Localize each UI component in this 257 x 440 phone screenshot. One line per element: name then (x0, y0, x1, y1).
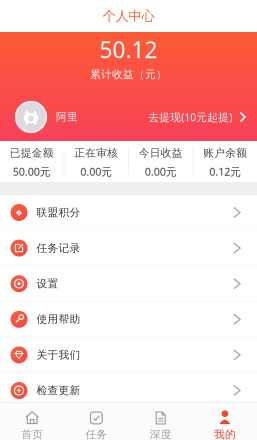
button[interactable]: 使用帮助 (0, 302, 257, 337)
button[interactable]: 联盟积分 (0, 195, 257, 230)
button[interactable]: 关于我们 (0, 337, 257, 372)
button[interactable]: 首页 (0, 403, 64, 440)
staticText: 关于我们 (36, 348, 80, 361)
staticText: 0.00元 (80, 164, 112, 179)
staticText: 任务记录 (36, 241, 80, 255)
staticText: 0.00元 (145, 164, 177, 179)
staticText: 联盟积分 (36, 206, 80, 219)
staticText: 阿里 (56, 110, 78, 123)
button[interactable]: 去提现(10元起提) (148, 110, 246, 124)
staticText: 账户余额 (203, 146, 247, 159)
staticText: 个人中心 (102, 8, 154, 24)
staticText: 50.12 (99, 34, 157, 64)
staticText: 任务 (85, 428, 107, 440)
staticText: 设置 (36, 277, 58, 290)
staticText: 深度 (150, 428, 172, 440)
button[interactable]: 任务记录 (0, 231, 257, 266)
button[interactable]: 个人中心 (0, 0, 257, 32)
button[interactable]: 任务 (64, 403, 128, 440)
staticText: 检查更新 (36, 384, 80, 397)
staticText: 首页 (21, 428, 43, 440)
staticText: 我的 (214, 428, 236, 440)
staticText: 已提金额 (10, 146, 54, 159)
button[interactable]: 检查更新 (0, 373, 257, 408)
staticText: 去提现(10元起提) (148, 110, 232, 124)
button[interactable]: 深度 (128, 403, 193, 440)
staticText: 今日收益 (139, 146, 183, 159)
staticText: 累计收益（元） (90, 68, 167, 81)
staticText: 正在审核 (74, 146, 118, 159)
staticText: 0.12元 (209, 164, 241, 179)
button[interactable]: 我的 (193, 403, 257, 440)
staticText: 50.00元 (13, 164, 51, 179)
staticText: 使用帮助 (36, 313, 80, 326)
button[interactable]: 设置 (0, 266, 257, 301)
